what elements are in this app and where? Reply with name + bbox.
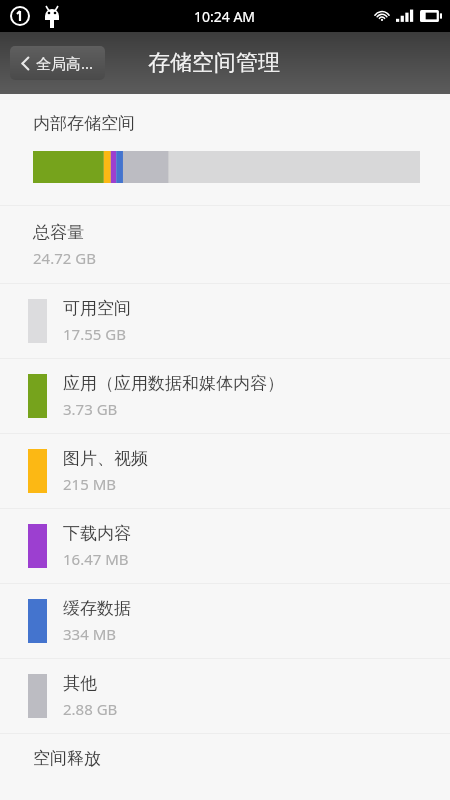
button[interactable]: 应用（应用数据和媒体内容）	[0, 359, 450, 433]
staticText: 2.88 GB	[63, 699, 118, 719]
staticText: 17.55 GB	[63, 324, 126, 344]
staticText: 空间释放	[33, 748, 101, 769]
button[interactable]: 全局高...	[10, 46, 105, 80]
staticText: 应用（应用数据和媒体内容）	[63, 373, 284, 394]
staticText: 图片、视频	[63, 448, 148, 469]
staticText: 存储空间管理	[148, 49, 280, 77]
staticText: 334 MB	[63, 624, 116, 644]
staticText: 缓存数据	[63, 598, 131, 619]
staticText: 16.47 MB	[63, 549, 129, 569]
staticText: 10:24 AM	[194, 7, 256, 26]
button[interactable]: 总容量	[0, 206, 450, 283]
staticText: 全局高...	[36, 53, 94, 73]
staticText: 下载内容	[63, 523, 131, 544]
button[interactable]: 可用空间	[0, 284, 450, 358]
staticText: 3.73 GB	[63, 399, 118, 419]
staticText: 其他	[63, 673, 97, 694]
staticText: 可用空间	[63, 298, 131, 319]
staticText: 215 MB	[63, 474, 116, 494]
button[interactable]: 图片、视频	[0, 434, 450, 508]
button[interactable]: 缓存数据	[0, 584, 450, 658]
staticText: 内部存储空间	[33, 113, 135, 134]
staticText: 24.72 GB	[33, 248, 96, 268]
button[interactable]: 下载内容	[0, 509, 450, 583]
button[interactable]: 其他	[0, 659, 450, 733]
staticText: 总容量	[33, 222, 84, 243]
